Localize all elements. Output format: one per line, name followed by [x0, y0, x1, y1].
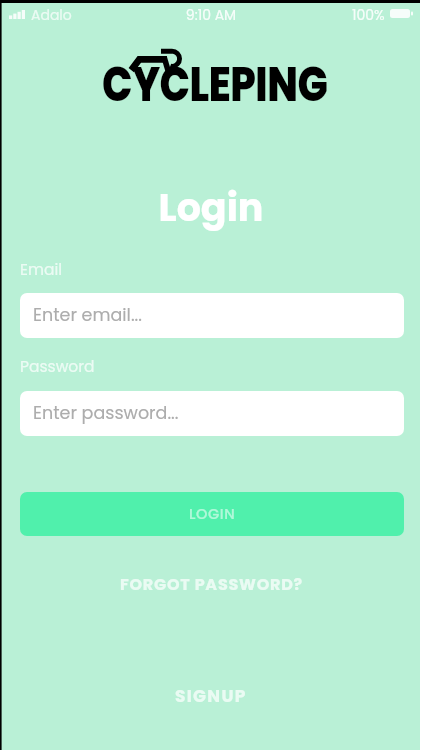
staticText: Login [0, 181, 422, 234]
staticText: Enter email... [33, 303, 142, 328]
button[interactable]: Enter password... [20, 391, 404, 436]
other: Battery full [390, 9, 413, 18]
button[interactable]: Enter email... [20, 293, 404, 338]
staticText: Adalo [31, 5, 72, 25]
staticText: Password [20, 356, 95, 378]
button[interactable]: SIGNUP [0, 682, 422, 710]
staticText: LOGIN [189, 504, 236, 524]
staticText: Enter password... [33, 401, 179, 426]
staticText: Email [20, 259, 63, 281]
staticText: 9:10 AM [0, 5, 422, 25]
other: Signal strength [9, 10, 25, 19]
staticText: 100% [352, 5, 385, 25]
staticText: CYCLEPING [102, 52, 328, 118]
button[interactable]: LOGIN [20, 492, 404, 536]
button[interactable]: FORGOT PASSWORD? [0, 570, 422, 598]
staticText: FORGOT PASSWORD? [120, 573, 303, 595]
staticText: SIGNUP [175, 684, 247, 708]
